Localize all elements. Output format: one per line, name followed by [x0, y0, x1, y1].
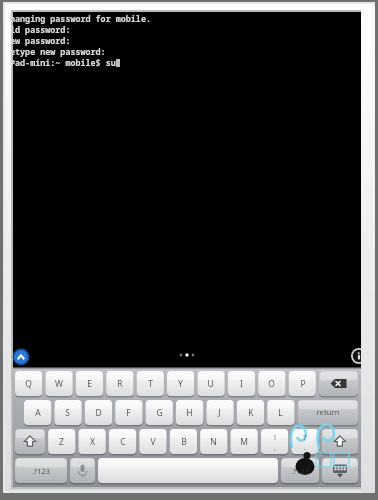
button[interactable]: .?123: [281, 458, 319, 483]
staticText: I: [240, 378, 243, 390]
button[interactable]: Hide keyboard: [322, 458, 358, 483]
staticText: etype new password:: [10, 46, 106, 57]
staticText: P: [300, 378, 306, 390]
button[interactable]: S: [54, 400, 81, 425]
button[interactable]: E: [76, 371, 103, 396]
staticText: F: [126, 407, 131, 419]
staticText: M: [240, 436, 248, 448]
button[interactable]: .?123: [15, 458, 67, 483]
button[interactable]: D: [85, 400, 112, 425]
staticText: hanging password for mobile.: [10, 13, 151, 24]
staticText: O: [268, 378, 275, 390]
button[interactable]: K: [237, 400, 264, 425]
staticText: ,: [274, 442, 276, 452]
staticText: J: [218, 407, 221, 419]
button[interactable]: U: [197, 371, 224, 396]
staticText: ?: [303, 432, 307, 442]
staticText: return: [316, 407, 340, 418]
staticText: Q: [25, 378, 32, 390]
staticText: .?123: [32, 466, 50, 476]
staticText: V: [150, 436, 156, 448]
button[interactable]: return: [298, 400, 358, 425]
staticText: A: [35, 407, 41, 419]
button[interactable]: Space: [98, 458, 278, 483]
staticText: H: [186, 407, 193, 419]
button[interactable]: N: [200, 429, 227, 454]
staticText: Y: [178, 378, 183, 390]
button[interactable]: I: [228, 371, 255, 396]
staticText: K: [248, 407, 254, 419]
button[interactable]: G: [146, 400, 173, 425]
button[interactable]: B: [170, 429, 197, 454]
staticText: B: [181, 436, 187, 448]
button[interactable]: H: [176, 400, 203, 425]
staticText: Pad-mini:~ mobile$ su: [10, 57, 116, 68]
button[interactable]: C: [109, 429, 136, 454]
button[interactable]: !: [261, 429, 288, 454]
button[interactable]: X: [79, 429, 106, 454]
button[interactable]: Q: [15, 371, 42, 396]
staticText: U: [207, 378, 214, 390]
button[interactable]: Shortcut: [12, 348, 30, 366]
button[interactable]: Shift: [322, 429, 358, 454]
staticText: ld password:: [10, 24, 71, 35]
staticText: W: [55, 378, 63, 390]
button[interactable]: W: [45, 371, 72, 396]
button[interactable]: O: [258, 371, 285, 396]
button[interactable]: A: [24, 400, 51, 425]
button[interactable]: R: [106, 371, 133, 396]
button[interactable]: Dictation: [70, 458, 95, 483]
staticText: D: [95, 407, 102, 419]
button[interactable]: Shift: [15, 429, 45, 454]
button[interactable]: T: [137, 371, 164, 396]
staticText: E: [87, 378, 92, 390]
button[interactable]: ?: [291, 429, 318, 454]
button[interactable]: Z: [48, 429, 75, 454]
button[interactable]: J: [206, 400, 233, 425]
staticText: Z: [59, 436, 64, 448]
button[interactable]: Y: [167, 371, 194, 396]
staticText: L: [278, 407, 283, 419]
staticText: .: [304, 442, 306, 452]
staticText: G: [156, 407, 163, 419]
staticText: S: [65, 407, 70, 419]
staticText: .?123: [291, 466, 309, 476]
button[interactable]: F: [115, 400, 142, 425]
button[interactable]: V: [139, 429, 166, 454]
button[interactable]: M: [230, 429, 257, 454]
button[interactable]: Backspace: [319, 371, 358, 396]
staticText: C: [120, 436, 126, 448]
button[interactable]: P: [289, 371, 316, 396]
staticText: N: [210, 436, 217, 448]
staticText: T: [148, 378, 153, 390]
staticText: !: [274, 432, 276, 442]
staticText: ew password:: [10, 35, 71, 46]
staticText: X: [90, 436, 95, 448]
button[interactable]: L: [267, 400, 294, 425]
button[interactable]: Info: [351, 347, 369, 365]
staticText: R: [117, 378, 123, 390]
